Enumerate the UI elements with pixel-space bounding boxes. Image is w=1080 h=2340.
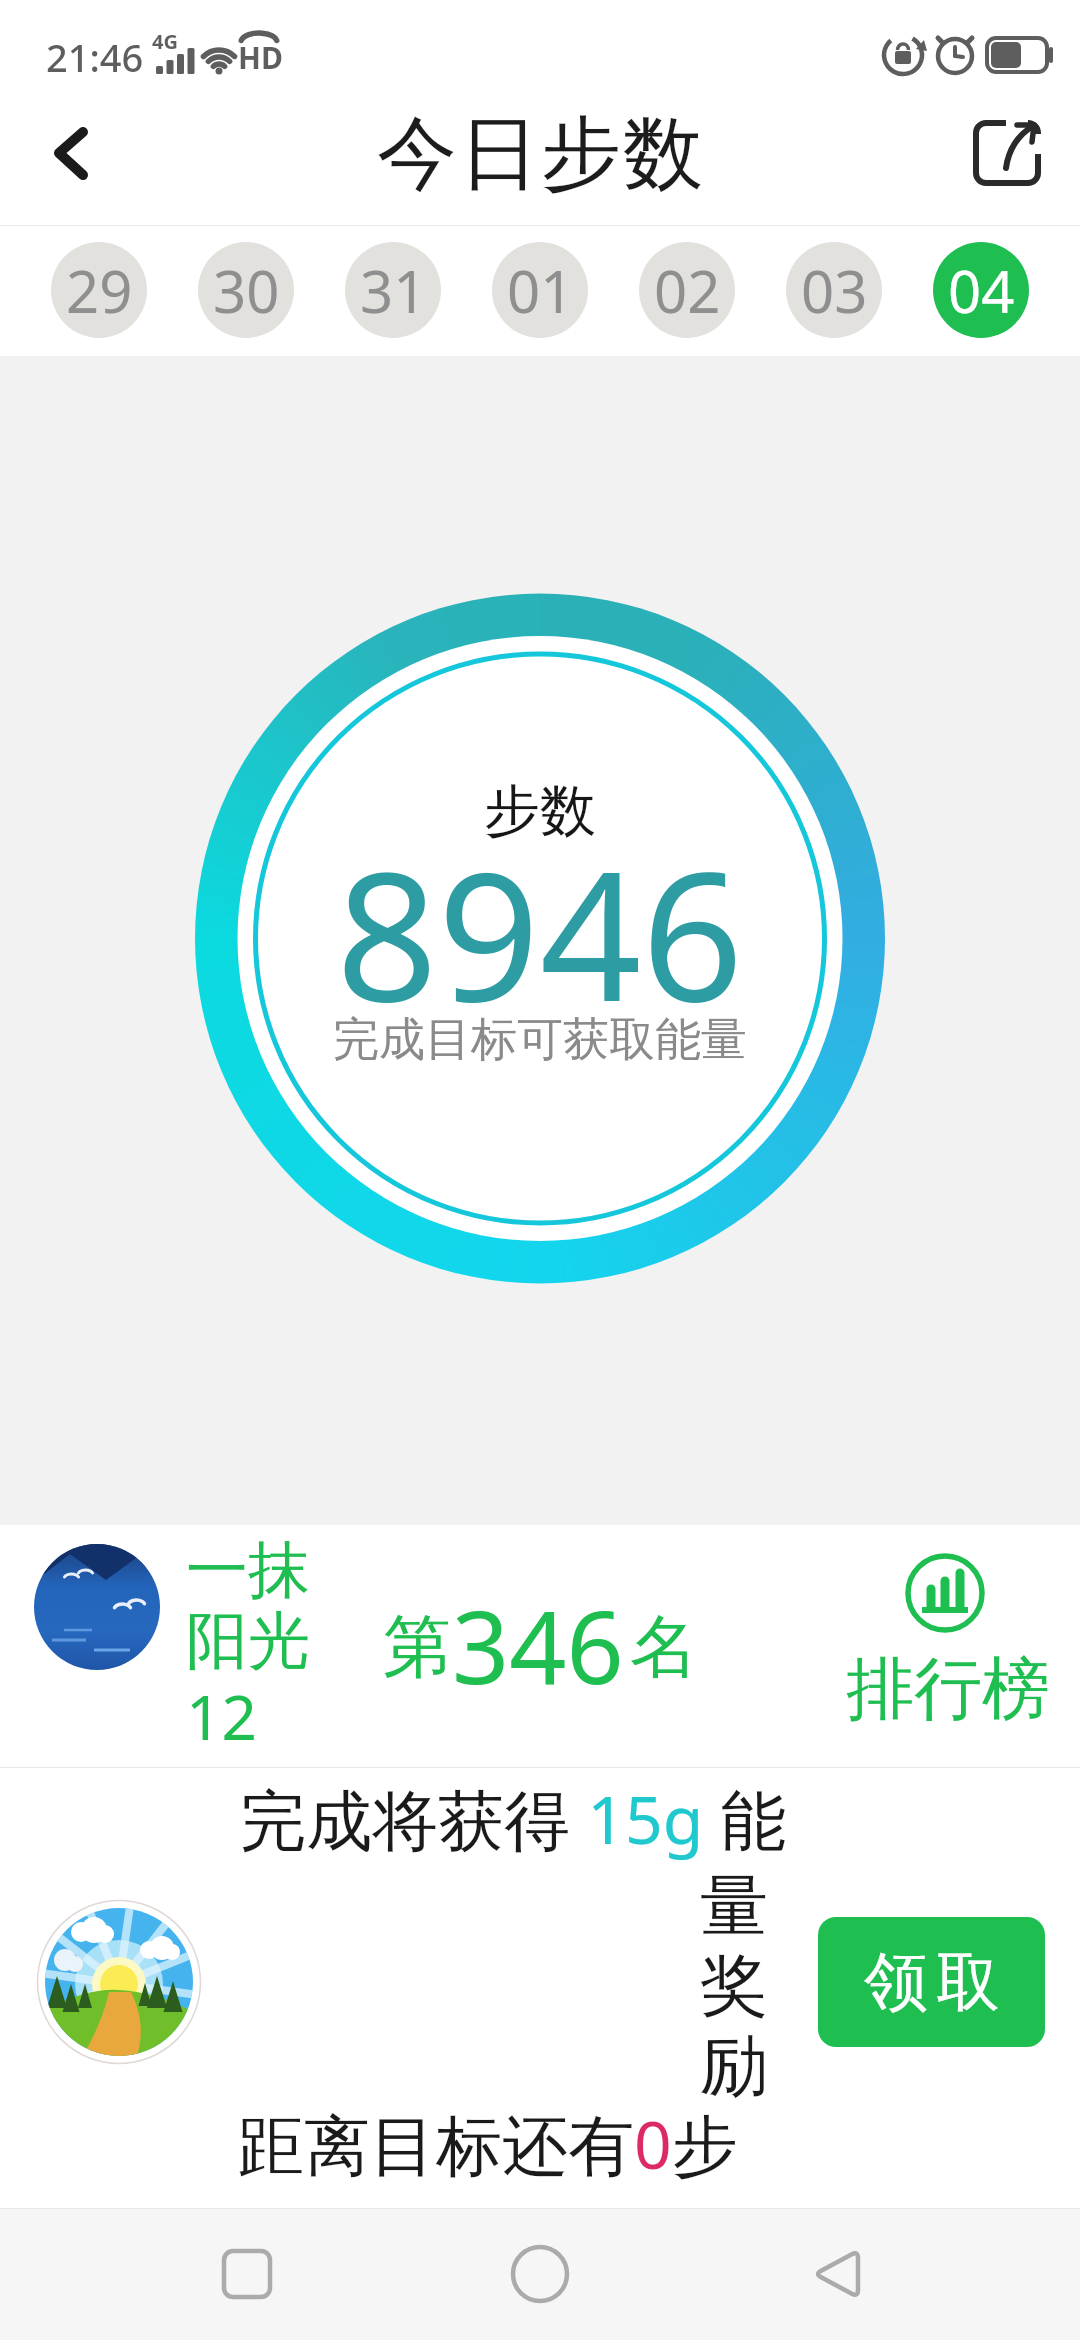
- staticText: 完成将获得 15g 能: [240, 1773, 787, 1863]
- staticText: 346: [452, 1577, 624, 1713]
- staticText: 30: [213, 251, 280, 330]
- button[interactable]: 02: [639, 242, 735, 338]
- staticText: 03: [801, 251, 868, 330]
- button[interactable]: [960, 110, 1052, 196]
- staticText: 排行榜: [846, 1647, 1050, 1733]
- staticText: 第: [383, 1605, 451, 1691]
- staticText: 领取: [860, 1942, 1004, 2023]
- staticText: 04: [948, 251, 1015, 330]
- staticText: 阳光: [186, 1602, 310, 1680]
- button[interactable]: [187, 2208, 307, 2340]
- staticText: 励: [700, 2024, 768, 2110]
- button[interactable]: [480, 2208, 600, 2340]
- staticText: 8946: [336, 811, 744, 1053]
- staticText: 12: [186, 1674, 257, 1758]
- button[interactable]: 01: [492, 242, 588, 338]
- staticText: 一抹: [186, 1531, 310, 1609]
- staticText: 步数: [484, 776, 596, 847]
- button[interactable]: 30: [198, 242, 294, 338]
- button[interactable]: 一抹: [0, 1525, 1080, 1767]
- staticText: 31: [360, 251, 427, 330]
- button[interactable]: 29: [51, 242, 147, 338]
- staticText: 量: [700, 1864, 768, 1950]
- button[interactable]: 04: [933, 242, 1029, 338]
- staticText: 4G: [152, 28, 178, 55]
- staticText: 21:46: [46, 31, 144, 83]
- button[interactable]: 领取: [818, 1917, 1045, 2047]
- staticText: 01: [507, 251, 574, 330]
- button[interactable]: 31: [345, 242, 441, 338]
- staticText: 02: [654, 251, 721, 330]
- staticText: 奖: [700, 1944, 768, 2030]
- staticText: 距离目标还有0步: [238, 2098, 738, 2188]
- staticText: 完成目标可获取能量: [333, 1011, 747, 1069]
- button[interactable]: [775, 2208, 895, 2340]
- button[interactable]: [30, 110, 120, 200]
- staticText: 今日步数: [376, 104, 704, 205]
- staticText: 29: [66, 251, 133, 330]
- staticText: 名: [630, 1605, 698, 1691]
- button[interactable]: 03: [786, 242, 882, 338]
- staticText: HD: [238, 37, 283, 78]
